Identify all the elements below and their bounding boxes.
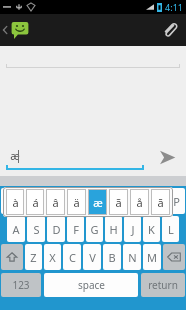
button[interactable]: D [47, 216, 65, 242]
button[interactable]: E [37, 188, 53, 214]
button[interactable]: O [149, 188, 166, 214]
staticText: å [136, 195, 143, 210]
staticText: M [147, 250, 157, 265]
button[interactable]: H [105, 216, 122, 242]
staticText: Y [97, 194, 104, 209]
button[interactable]: W [19, 188, 35, 214]
staticText: æ [10, 148, 20, 163]
staticText: R [60, 194, 67, 209]
button[interactable]: à [6, 189, 24, 215]
staticText: à [12, 195, 19, 210]
staticText: I [137, 194, 141, 209]
staticText: P [173, 194, 180, 209]
staticText: ā [157, 195, 164, 210]
button[interactable]: S [27, 216, 45, 242]
staticText: E [42, 194, 49, 209]
staticText: â [52, 195, 59, 210]
button[interactable]: B [103, 244, 121, 270]
staticText: U [115, 194, 124, 209]
button[interactable]: T [73, 188, 90, 214]
button[interactable]: N [123, 244, 141, 270]
button[interactable]: I [130, 188, 147, 214]
staticText: H [109, 222, 118, 237]
staticText: Q [5, 194, 14, 209]
staticText: á [32, 195, 39, 210]
button[interactable]: ã [109, 189, 128, 215]
staticText: G [90, 222, 99, 237]
button[interactable]: K [143, 216, 160, 242]
button[interactable]: Y [92, 188, 109, 214]
staticText: ä [73, 195, 80, 210]
button[interactable]: G [86, 216, 103, 242]
staticText: V [89, 250, 96, 265]
button[interactable]: A [7, 216, 25, 242]
staticText: ã [115, 195, 122, 210]
button[interactable]: Back [0, 14, 32, 46]
staticText: æ [93, 195, 103, 210]
staticText: S [33, 222, 40, 237]
button[interactable]: â [46, 189, 65, 215]
staticText: Z [30, 250, 37, 265]
button[interactable]: P [168, 188, 185, 214]
button[interactable]: X [44, 244, 61, 270]
button[interactable]: æ [6, 144, 144, 170]
staticText: 4:11 [165, 1, 183, 13]
staticText: D [52, 222, 61, 237]
button[interactable]: J [124, 216, 141, 242]
button[interactable]: æ [88, 189, 107, 215]
button[interactable]: return [141, 273, 185, 297]
button[interactable]: Attach [154, 14, 186, 46]
staticText: B [108, 250, 116, 265]
button[interactable]: ä [67, 189, 86, 215]
button[interactable]: Q [1, 188, 17, 214]
staticText: K [148, 222, 155, 237]
button[interactable]: F [67, 216, 84, 242]
button[interactable]: U [111, 188, 128, 214]
staticText: J [131, 222, 135, 237]
staticText: X [49, 250, 56, 265]
staticText: return [148, 278, 178, 292]
button[interactable]: Shift [1, 244, 23, 270]
staticText: T [78, 194, 85, 209]
button[interactable]: Z [25, 244, 42, 270]
button[interactable]: Backspace [163, 244, 185, 270]
staticText: C [69, 250, 76, 265]
button[interactable]: Send [148, 138, 186, 176]
button[interactable]: space [44, 273, 138, 297]
button[interactable]: R [55, 188, 71, 214]
button[interactable]: å [130, 189, 149, 215]
button[interactable]: ā [151, 189, 170, 215]
staticText: O [153, 194, 162, 209]
staticText: 123 [12, 278, 30, 292]
button[interactable]: C [63, 244, 81, 270]
staticText: W [22, 194, 33, 209]
staticText: F [73, 222, 79, 237]
button[interactable]: M [143, 244, 161, 270]
staticText: space [78, 278, 105, 292]
button[interactable]: 123 [1, 273, 41, 297]
button[interactable]: á [26, 189, 44, 215]
staticText: A [12, 222, 20, 237]
staticText: L [168, 222, 174, 237]
button[interactable]: V [83, 244, 101, 270]
staticText: N [128, 250, 137, 265]
button[interactable]: L [162, 216, 179, 242]
